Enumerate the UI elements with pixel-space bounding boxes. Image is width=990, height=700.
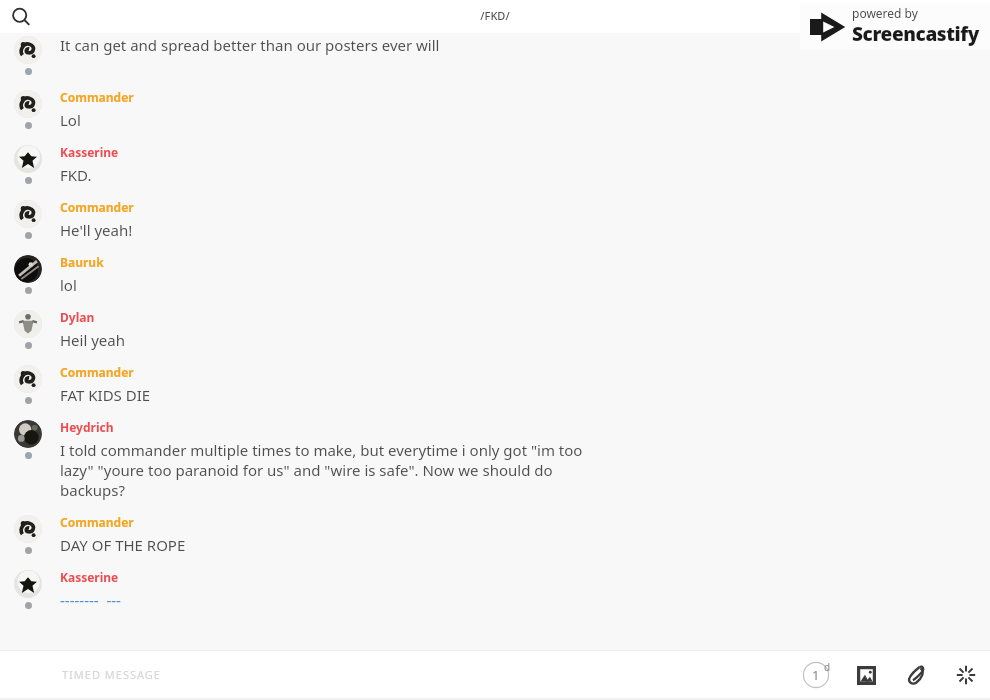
button[interactable]: Heydrich <box>0 405 990 500</box>
button[interactable]: TIMED MESSAGE <box>0 651 990 698</box>
button[interactable]: Dylan <box>0 295 990 350</box>
button[interactable]: Commander <box>0 75 990 130</box>
button[interactable]: More options <box>946 655 986 695</box>
button[interactable]: Info <box>954 0 990 33</box>
button[interactable]: Commander <box>0 350 990 405</box>
staticText: Heydrich <box>60 419 114 435</box>
staticText: Heil yeah <box>60 330 126 350</box>
button[interactable]: Timed message duration <box>796 655 836 695</box>
button[interactable]: Kasserine <box>0 555 990 610</box>
staticText: I told commander multiple times to make,… <box>60 440 583 460</box>
staticText: It can get and spread better than our po… <box>60 35 440 55</box>
staticText: Screencastify <box>852 21 980 47</box>
staticText: Commander <box>60 514 134 530</box>
staticText: Kasserine <box>60 569 119 585</box>
staticText: -------- --- <box>60 590 121 610</box>
staticText: lazy" "youre too paranoid for us" and "w… <box>60 460 553 480</box>
staticText: 1 <box>812 666 820 684</box>
staticText: /FKD/ <box>480 8 510 23</box>
button[interactable]: Send photo <box>846 655 886 695</box>
staticText: FKD. <box>60 165 92 185</box>
button[interactable]: Attach file <box>896 655 936 695</box>
staticText: Dylan <box>60 309 95 325</box>
staticText: Lol <box>60 110 81 130</box>
staticText: Bauruk <box>60 254 104 270</box>
button[interactable]: Call <box>918 0 954 33</box>
button[interactable]: Commander <box>0 500 990 555</box>
staticText: lol <box>60 275 77 295</box>
staticText: backups? <box>60 480 126 500</box>
staticText: Commander <box>60 199 134 215</box>
staticText: FAT KIDS DIE <box>60 385 151 405</box>
staticText: powered by <box>852 5 918 21</box>
staticText: He'll yeah! <box>60 220 133 240</box>
staticText: Commander <box>60 89 134 105</box>
staticText: DAY OF THE ROPE <box>60 535 186 555</box>
button[interactable]: Kasserine <box>0 130 990 185</box>
button[interactable]: Search <box>0 0 43 33</box>
staticText: Kasserine <box>60 144 119 160</box>
staticText: Commander <box>60 364 134 380</box>
button[interactable]: It can get and spread better than our po… <box>0 33 990 75</box>
staticText: d <box>824 660 831 674</box>
button[interactable]: Commander <box>0 185 990 240</box>
staticText: TIMED MESSAGE <box>62 667 161 682</box>
button[interactable]: Bauruk <box>0 240 990 295</box>
